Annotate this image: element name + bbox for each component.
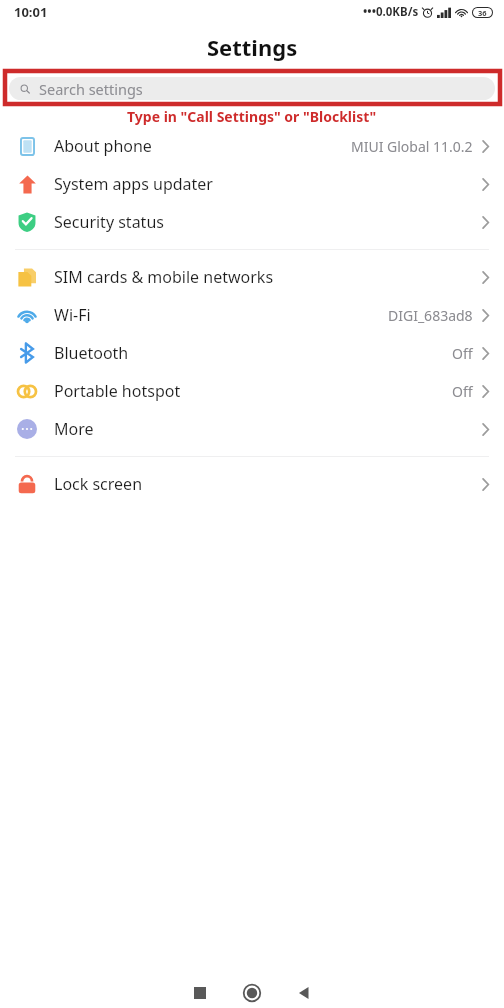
button[interactable]: Back (287, 977, 321, 1008)
button[interactable]: About phone (0, 127, 504, 165)
button[interactable]: Portable hotspot (0, 372, 504, 410)
staticText: 36 (478, 8, 487, 17)
staticText: System apps updater (54, 173, 213, 195)
staticText: SIM cards & mobile networks (54, 266, 274, 288)
button[interactable]: Home (235, 977, 269, 1008)
button[interactable]: Wi-Fi (0, 296, 504, 334)
staticText: More (54, 418, 94, 440)
button[interactable]: Recent apps (183, 977, 217, 1008)
staticText: Security status (54, 211, 164, 233)
staticText: Off (452, 344, 473, 363)
staticText: •••0.0KB/s (363, 4, 419, 20)
button[interactable]: More (0, 410, 504, 448)
staticText: Search settings (39, 79, 143, 99)
button[interactable]: Lock screen (0, 465, 504, 503)
button[interactable]: System apps updater (0, 165, 504, 203)
staticText: Wi-Fi (54, 304, 91, 326)
staticText: 10:01 (14, 3, 48, 21)
staticText: Bluetooth (54, 342, 129, 364)
staticText: Settings (207, 32, 298, 62)
button[interactable]: Security status (0, 203, 504, 241)
staticText: DIGI_683ad8 (388, 306, 473, 325)
button[interactable]: SIM cards & mobile networks (0, 258, 504, 296)
staticText: Off (452, 382, 473, 401)
staticText: MIUI Global 11.0.2 (351, 137, 473, 156)
staticText: Lock screen (54, 473, 143, 495)
button[interactable]: Search settings (9, 77, 495, 100)
staticText: Portable hotspot (54, 380, 181, 402)
button[interactable]: Bluetooth (0, 334, 504, 372)
staticText: Type in "Call Settings" or "Blocklist" (127, 107, 377, 126)
staticText: About phone (54, 135, 152, 157)
